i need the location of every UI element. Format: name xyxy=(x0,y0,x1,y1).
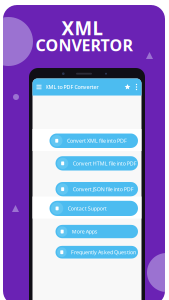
staticText: Frequently Asked Question xyxy=(71,249,136,256)
button[interactable]: More Apps xyxy=(55,225,138,238)
button[interactable]: Frequently Asked Question xyxy=(55,246,138,258)
staticText: Convert HTML file into PDF xyxy=(73,160,137,167)
staticText: Convert JSON file into PDF xyxy=(73,186,134,193)
staticText: CONVERTOR xyxy=(35,34,132,56)
button[interactable]: Convert XML file into PDF xyxy=(49,133,138,148)
button[interactable]: Convert JSON file into PDF xyxy=(55,182,138,196)
staticText: Contact Support xyxy=(68,205,107,212)
staticText: XML xyxy=(61,16,102,40)
staticText: More Apps xyxy=(72,228,98,235)
staticText: XML to PDF Converter xyxy=(45,83,98,91)
button[interactable]: Convert HTML file into PDF xyxy=(55,156,138,170)
button[interactable]: Contact Support xyxy=(49,201,138,216)
staticText: Convert XML file into PDF xyxy=(67,137,127,144)
